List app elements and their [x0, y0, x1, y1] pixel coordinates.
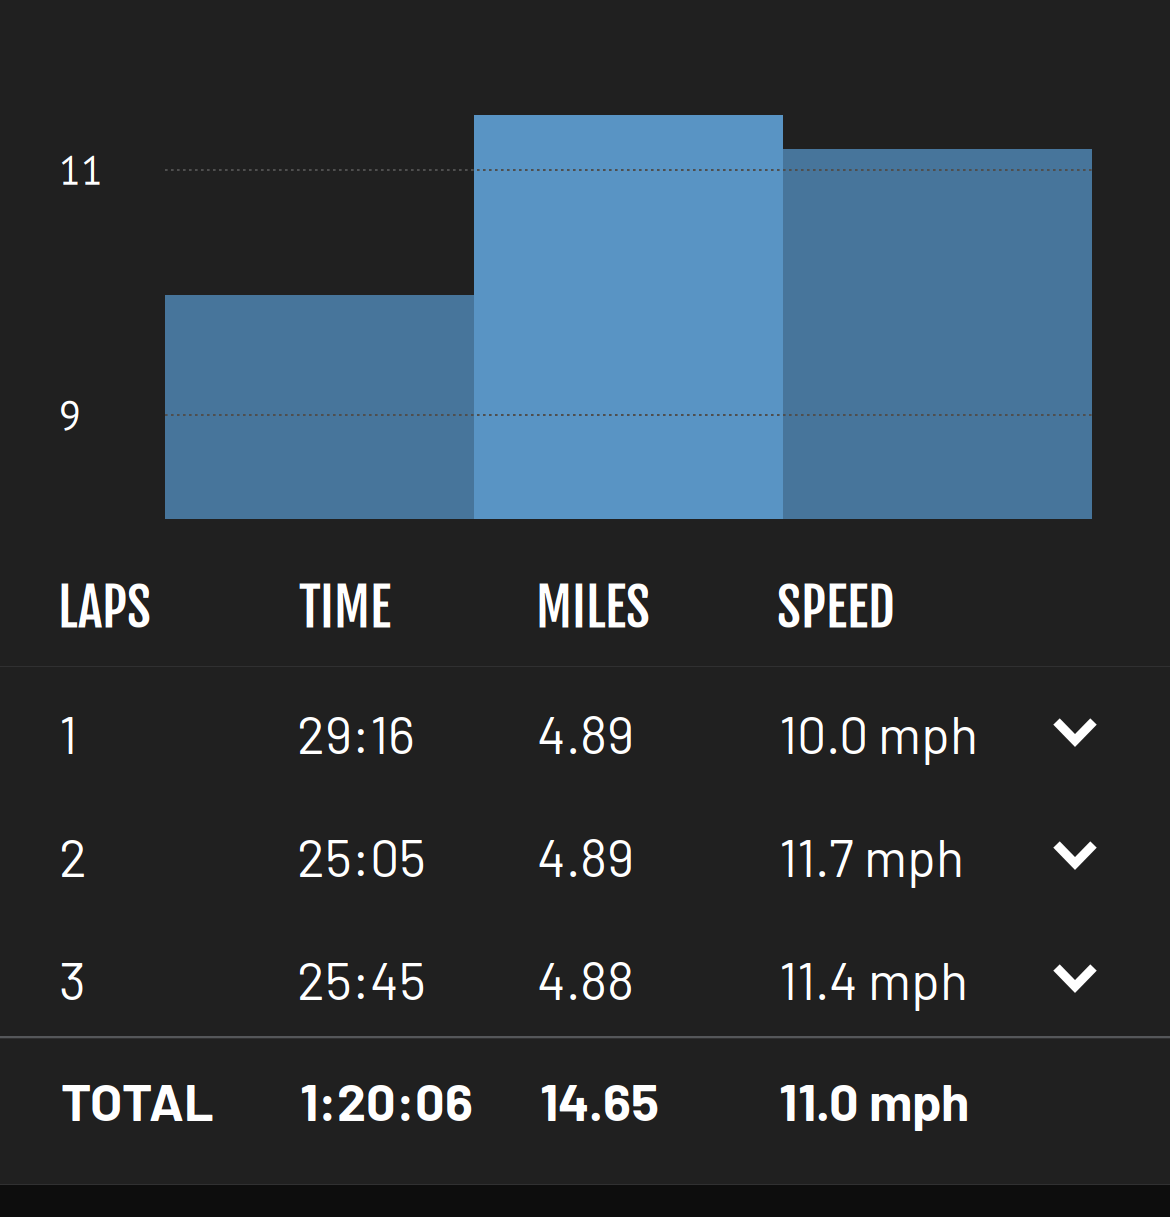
button[interactable]: 3	[0, 913, 1170, 1036]
staticText: 25:45	[297, 948, 426, 1010]
staticText: 25:05	[297, 825, 426, 887]
staticText: TOTAL	[61, 1069, 214, 1131]
staticText: 3	[59, 948, 86, 1010]
staticText: 4.89	[537, 825, 634, 887]
button[interactable]: 1	[0, 667, 1170, 790]
staticText: SPEED	[777, 575, 895, 640]
staticText: 29:16	[297, 702, 415, 764]
staticText: 4.89	[537, 702, 634, 764]
button[interactable]: 2	[0, 790, 1170, 913]
staticText: 11.7 mph	[779, 825, 964, 887]
staticText: 14.65	[540, 1069, 659, 1131]
staticText: 2	[59, 825, 87, 887]
staticText: 11.0 mph	[779, 1069, 969, 1131]
staticText: 11	[59, 144, 103, 196]
staticText: 10.0 mph	[779, 702, 978, 764]
staticText: LAPS	[58, 575, 151, 640]
staticText: 4.88	[537, 948, 634, 1010]
staticText: MILES	[536, 575, 650, 640]
staticText: 11.4 mph	[779, 948, 968, 1010]
staticText: 9	[59, 389, 81, 441]
staticText: 1:20:06	[300, 1069, 473, 1131]
staticText: TIME	[299, 575, 391, 640]
staticText: 1	[59, 702, 77, 764]
